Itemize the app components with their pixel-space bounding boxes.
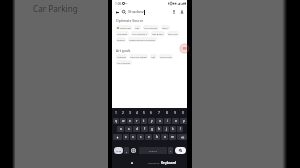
button[interactable]: . bbox=[168, 147, 173, 154]
staticText: v bbox=[148, 135, 150, 139]
button[interactable]: Gas bbox=[150, 54, 157, 59]
staticText: Get It bbox=[162, 26, 169, 29]
button[interactable]: used for speed bbox=[129, 54, 148, 59]
button[interactable]: 8 bbox=[163, 109, 171, 115]
button[interactable]: Home bbox=[131, 162, 133, 164]
button[interactable]: Shift bbox=[113, 134, 122, 140]
staticText: Car Parking bbox=[144, 26, 158, 29]
button[interactable]: Roblox bbox=[116, 37, 126, 42]
staticText: f bbox=[144, 127, 146, 131]
button[interactable]: v bbox=[145, 134, 152, 140]
button[interactable]: 5 bbox=[140, 109, 147, 115]
button[interactable]: r bbox=[134, 118, 140, 124]
button[interactable]: 1 bbox=[112, 109, 119, 115]
staticText: i bbox=[167, 119, 168, 123]
button[interactable]: z bbox=[123, 134, 129, 140]
staticText: 6 bbox=[150, 110, 152, 114]
button[interactable]: Car Parking bbox=[143, 25, 159, 30]
staticText: Art goals bbox=[116, 48, 131, 53]
button[interactable]: Search bbox=[175, 147, 186, 154]
staticText: b bbox=[156, 135, 158, 139]
button[interactable]: g bbox=[149, 126, 155, 132]
button[interactable]: 7 bbox=[155, 109, 163, 115]
button[interactable]: d bbox=[133, 126, 140, 132]
staticText: 7 bbox=[158, 110, 160, 114]
staticText: Car Parking bbox=[117, 61, 131, 64]
button[interactable]: Car Parking 2 bbox=[131, 31, 149, 36]
button[interactable]: cold to eat bbox=[159, 54, 173, 59]
staticText: Car Parking 2 bbox=[132, 32, 148, 35]
button[interactable]: b bbox=[153, 134, 160, 140]
button[interactable]: 3 bbox=[126, 109, 133, 115]
staticText: 5 bbox=[143, 110, 145, 114]
button[interactable]: Gas Boost bbox=[151, 31, 165, 36]
staticText: . bbox=[170, 149, 171, 153]
staticText: p bbox=[183, 119, 185, 123]
button[interactable]: l bbox=[177, 126, 183, 132]
staticText: w bbox=[122, 119, 125, 123]
staticText: ?123 bbox=[116, 149, 122, 152]
button[interactable]: Car Parking bbox=[116, 60, 132, 65]
button[interactable]: Voice search bbox=[171, 9, 177, 15]
button[interactable]: p bbox=[180, 118, 187, 124]
button[interactable]: o bbox=[172, 118, 179, 124]
staticText: e bbox=[129, 119, 131, 123]
button[interactable]: Shadow bbox=[116, 54, 127, 59]
button[interactable]: Get It bbox=[161, 25, 170, 30]
button[interactable]: e bbox=[127, 118, 133, 124]
button[interactable]: 2 bbox=[119, 109, 126, 115]
button[interactable]: Back bbox=[114, 9, 120, 15]
button[interactable]: w bbox=[120, 118, 126, 124]
staticText: Gas bbox=[151, 55, 156, 58]
button[interactable]: 6 bbox=[147, 109, 155, 115]
staticText: 2 bbox=[122, 110, 124, 114]
button[interactable]: f bbox=[141, 126, 148, 132]
staticText: g bbox=[151, 127, 153, 131]
staticText: Supermarket Simulator bbox=[129, 38, 156, 41]
button[interactable]: j bbox=[163, 126, 169, 132]
staticText: Car Parking bbox=[33, 3, 78, 14]
button[interactable]: m bbox=[169, 134, 176, 140]
staticText: d bbox=[136, 127, 138, 131]
button[interactable]: h bbox=[156, 126, 162, 132]
button[interactable]: 4 bbox=[133, 109, 140, 115]
button[interactable]: Minecraft bbox=[116, 25, 132, 30]
staticText: x bbox=[132, 135, 134, 139]
button[interactable]: ?123 bbox=[114, 147, 123, 154]
button[interactable]: Supermarket Simulator bbox=[128, 37, 157, 42]
staticText: s bbox=[128, 127, 130, 131]
button[interactable]: 9 bbox=[171, 109, 179, 115]
staticText: Windows bbox=[117, 32, 128, 35]
staticText: 1:06 bbox=[115, 2, 122, 6]
staticText: t bbox=[143, 119, 145, 123]
button[interactable]: x bbox=[130, 134, 136, 140]
button[interactable]: Gas bbox=[134, 25, 141, 30]
staticText: English bbox=[149, 149, 158, 152]
button[interactable]: Backspace bbox=[177, 134, 187, 140]
button[interactable]: i bbox=[164, 118, 171, 124]
staticText: Keyboard bbox=[161, 161, 177, 165]
button[interactable]: s bbox=[125, 126, 132, 132]
staticText: c bbox=[140, 135, 142, 139]
staticText: Optimate Source bbox=[116, 18, 144, 23]
button[interactable]: a bbox=[117, 126, 124, 132]
button[interactable]: u bbox=[156, 118, 163, 124]
button[interactable]: Windows bbox=[116, 31, 129, 36]
button[interactable]: , bbox=[124, 147, 129, 154]
button[interactable]: n bbox=[161, 134, 168, 140]
button[interactable]: Find Out bbox=[167, 31, 179, 36]
button[interactable]: t bbox=[141, 118, 147, 124]
button[interactable]: 0 bbox=[179, 109, 187, 115]
button[interactable]: English bbox=[139, 147, 167, 154]
button[interactable]: c bbox=[137, 134, 144, 140]
button[interactable]: y bbox=[148, 118, 155, 124]
button[interactable]: k bbox=[170, 126, 176, 132]
button[interactable]: Account bbox=[179, 9, 185, 15]
staticText: Shadow bbox=[117, 55, 126, 58]
staticText: a bbox=[120, 127, 122, 131]
staticText: 1 bbox=[115, 110, 117, 114]
staticText: m bbox=[171, 135, 174, 139]
button[interactable]: Emoji bbox=[131, 148, 136, 153]
staticText: 9 bbox=[174, 110, 176, 114]
button[interactable]: q bbox=[113, 118, 119, 124]
